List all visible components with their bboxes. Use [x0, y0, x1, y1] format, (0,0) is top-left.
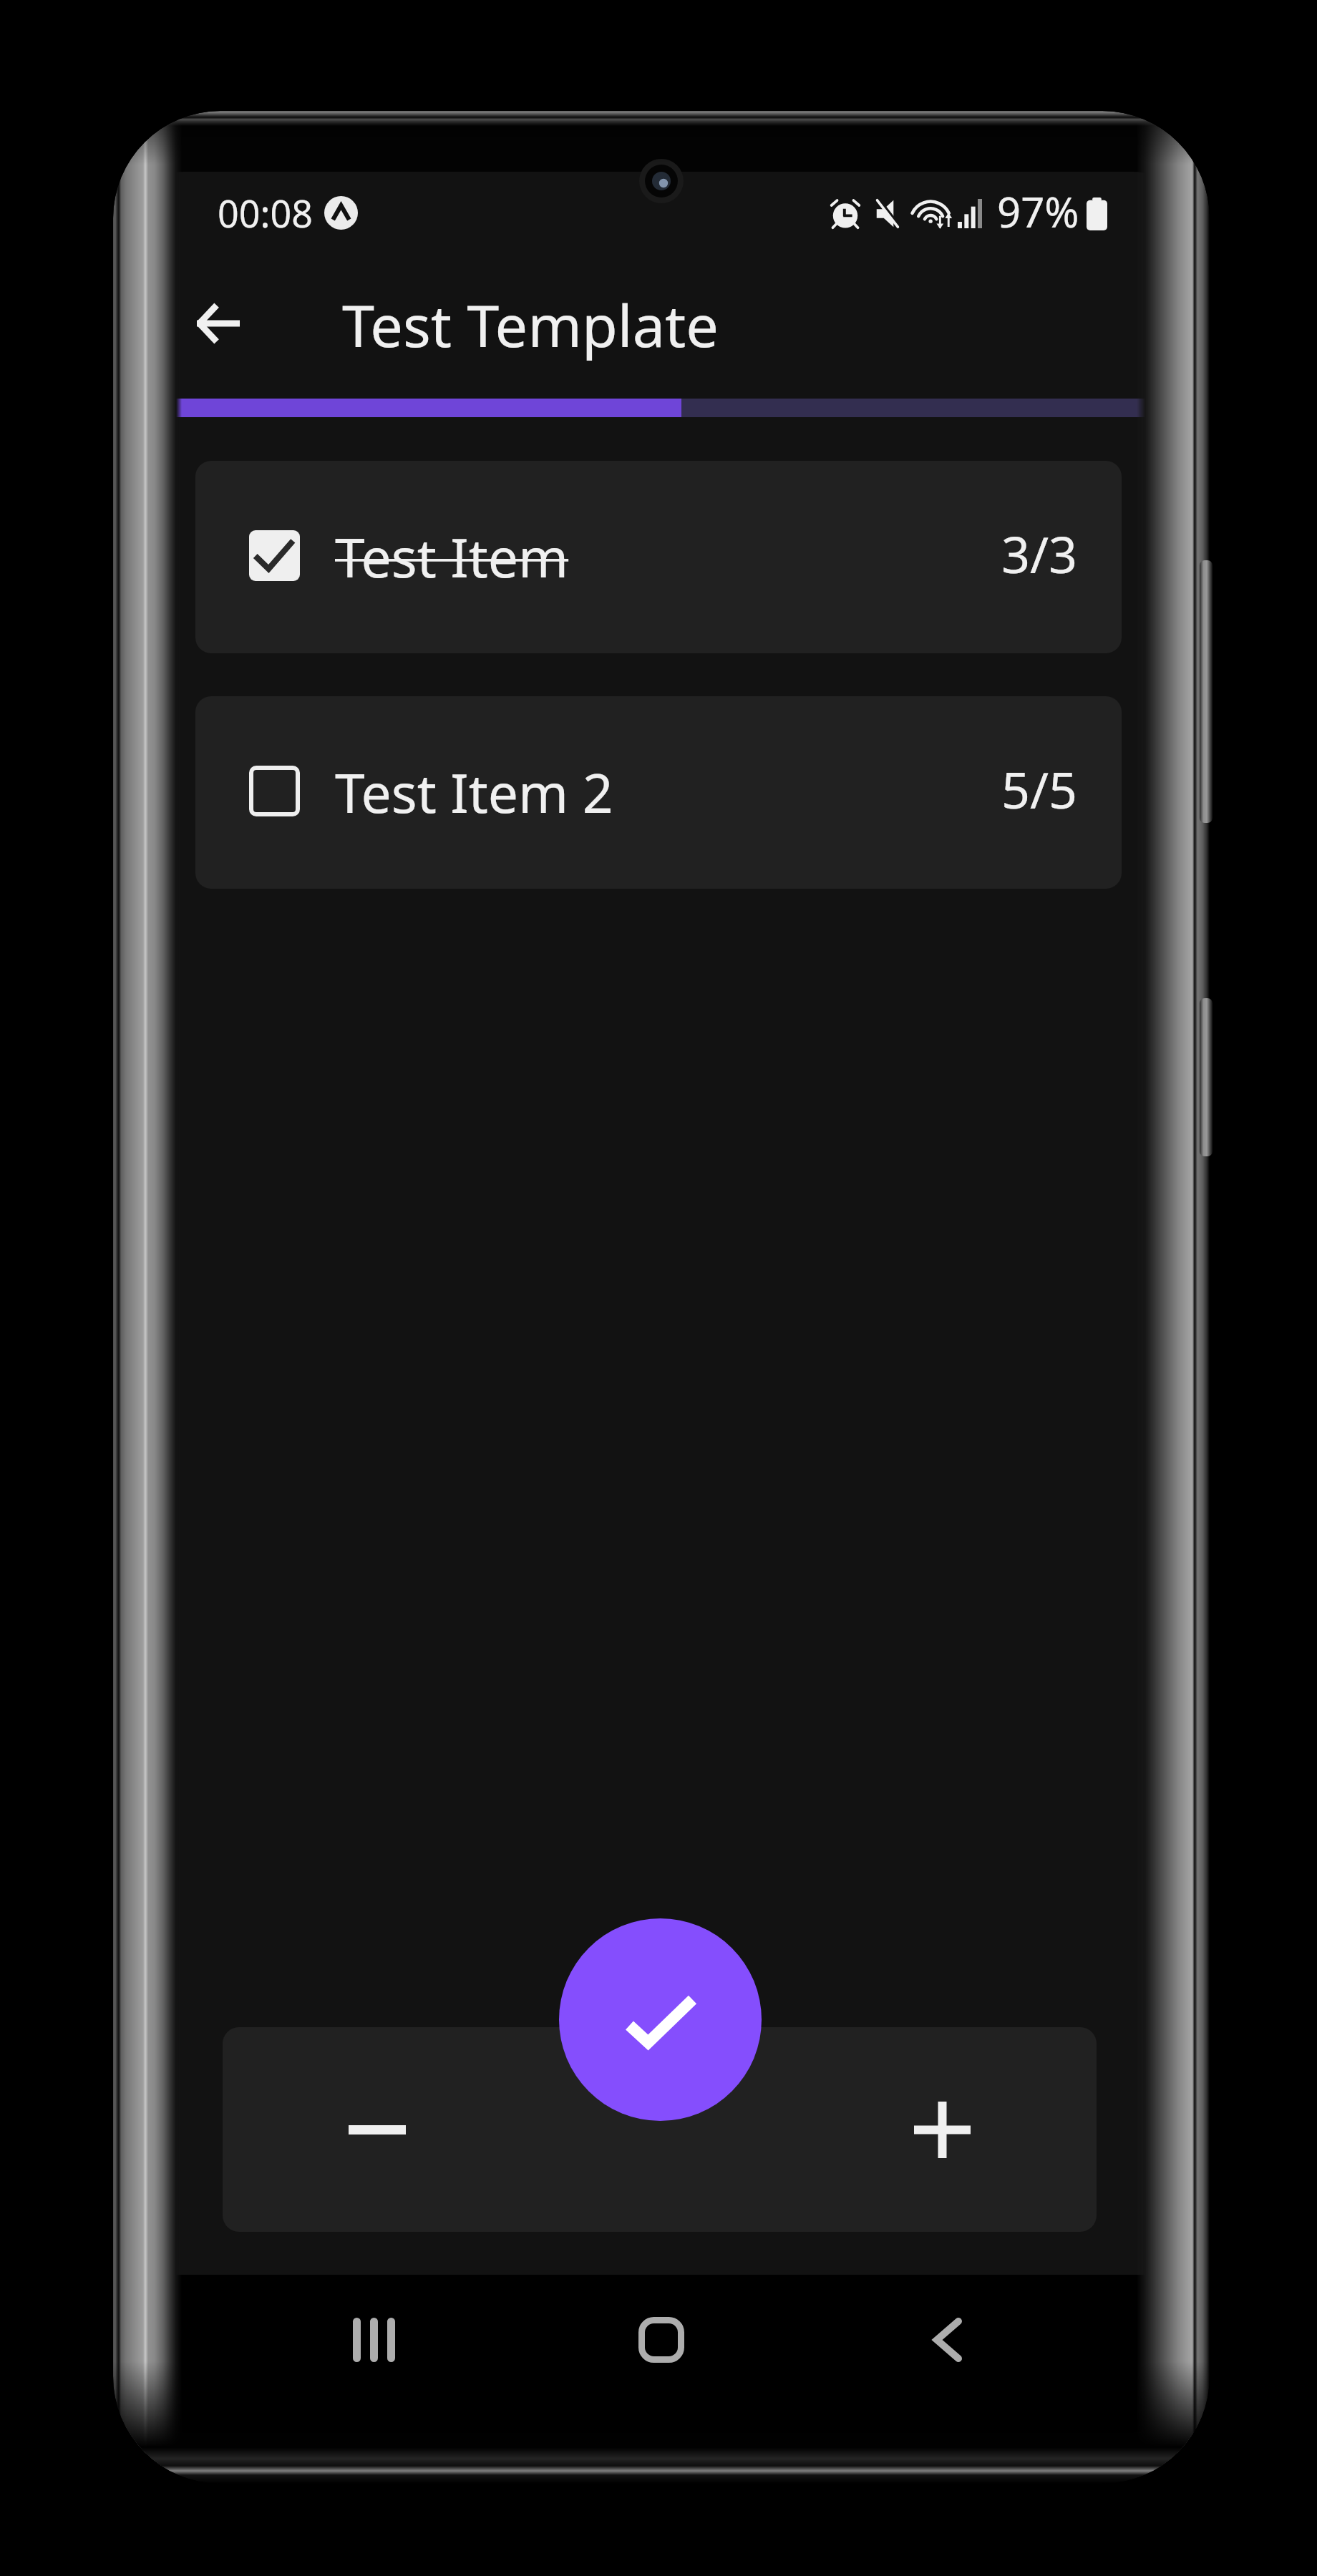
button[interactable]: Confirm [559, 1918, 762, 2121]
staticText: Test Item [335, 520, 569, 593]
button[interactable]: Toggle item [195, 461, 1122, 653]
button[interactable]: Increase [787, 2027, 1097, 2232]
staticText: 00:08 [218, 187, 313, 238]
staticText: 5/5 [1001, 755, 1078, 823]
button[interactable]: Decrease [223, 2027, 532, 2232]
button[interactable]: Back [175, 280, 261, 366]
button[interactable]: Recents [322, 2260, 425, 2419]
button[interactable]: Home [610, 2260, 713, 2419]
staticText: Test Item 2 [335, 756, 613, 829]
staticText: 3/3 [1001, 519, 1078, 587]
button[interactable]: Toggle item [249, 766, 300, 816]
button[interactable]: Toggle item [249, 530, 300, 581]
staticText: 97% [997, 183, 1079, 240]
staticText: Test Template [342, 285, 719, 364]
button[interactable]: Toggle item [195, 696, 1122, 889]
button[interactable]: Back [896, 2260, 999, 2419]
